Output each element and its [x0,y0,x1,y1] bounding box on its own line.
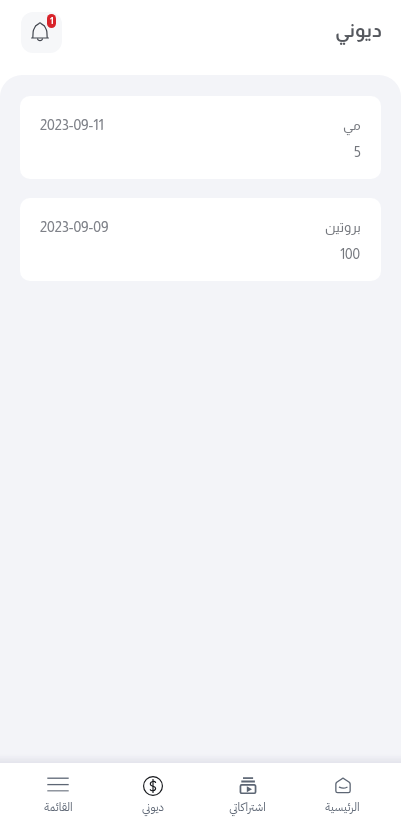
staticText: 100 [340,246,361,262]
staticText: ديوني [335,20,382,41]
staticText: القائمة [44,799,73,816]
staticText: الرئيسية [325,799,360,816]
staticText: 2023-09-09 [40,219,109,235]
staticText: ديوني [142,799,164,816]
staticText: اشتراكاتي [229,799,266,816]
button[interactable]: القائمة [11,763,105,823]
staticText: 2023-09-11 [40,117,104,133]
button[interactable]: 2023-09-11 [20,96,381,179]
button[interactable]: 2023-09-09 [20,198,381,281]
button[interactable]: ديوني [105,763,200,823]
staticText: مي [343,118,361,133]
button[interactable]: Notifications [21,12,62,53]
staticText: 1 [50,16,54,26]
button[interactable]: الرئيسية [295,763,390,823]
button[interactable]: اشتراكاتي [200,763,295,823]
staticText: بروتين [325,220,361,235]
staticText: 5 [354,144,361,160]
